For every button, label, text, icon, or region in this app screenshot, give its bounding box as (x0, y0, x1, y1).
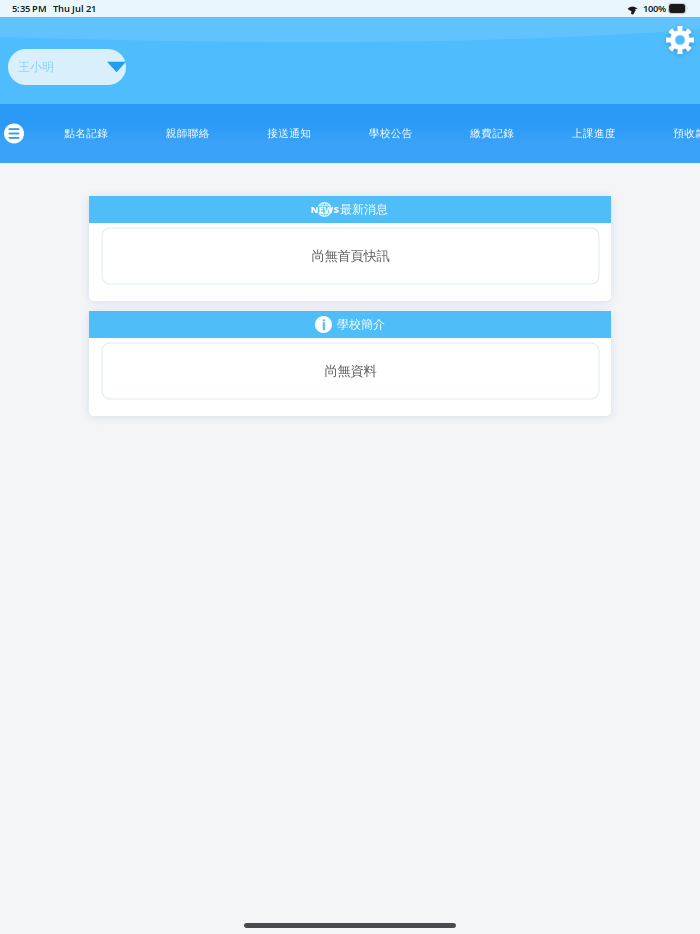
staticText: 親師聯絡 (166, 127, 210, 140)
staticText: 王小明 (18, 60, 54, 74)
staticText: 最新消息 (340, 202, 388, 217)
staticText: 學校簡介 (337, 317, 385, 332)
staticText: 繳費記錄 (470, 127, 514, 140)
button[interactable]: 點名記錄 (35, 104, 137, 163)
button[interactable]: 王小明 (8, 49, 126, 85)
button[interactable]: 學校公告 (340, 104, 441, 163)
button[interactable]: 預收款項 (644, 104, 700, 163)
button[interactable]: 繳費記錄 (441, 104, 543, 163)
staticText: Thu Jul 21 (53, 2, 96, 15)
staticText: 100% (643, 2, 666, 15)
staticText: i (321, 315, 325, 334)
button[interactable]: Menu (4, 123, 24, 143)
staticText: 預收款項 (673, 127, 700, 140)
staticText: 接送通知 (267, 127, 311, 140)
staticText: 尚無資料 (324, 363, 376, 379)
staticText: 上課進度 (572, 127, 616, 140)
staticText: 點名記錄 (64, 127, 108, 140)
staticText: 5:35 PM (12, 2, 47, 15)
button[interactable]: 上課進度 (543, 104, 644, 163)
button[interactable]: Settings (666, 26, 694, 54)
staticText: 尚無首頁快訊 (311, 248, 389, 264)
staticText: 學校公告 (369, 127, 413, 140)
staticText: NEWS (310, 203, 338, 216)
button[interactable]: 親師聯絡 (137, 104, 238, 163)
button[interactable]: 接送通知 (238, 104, 340, 163)
